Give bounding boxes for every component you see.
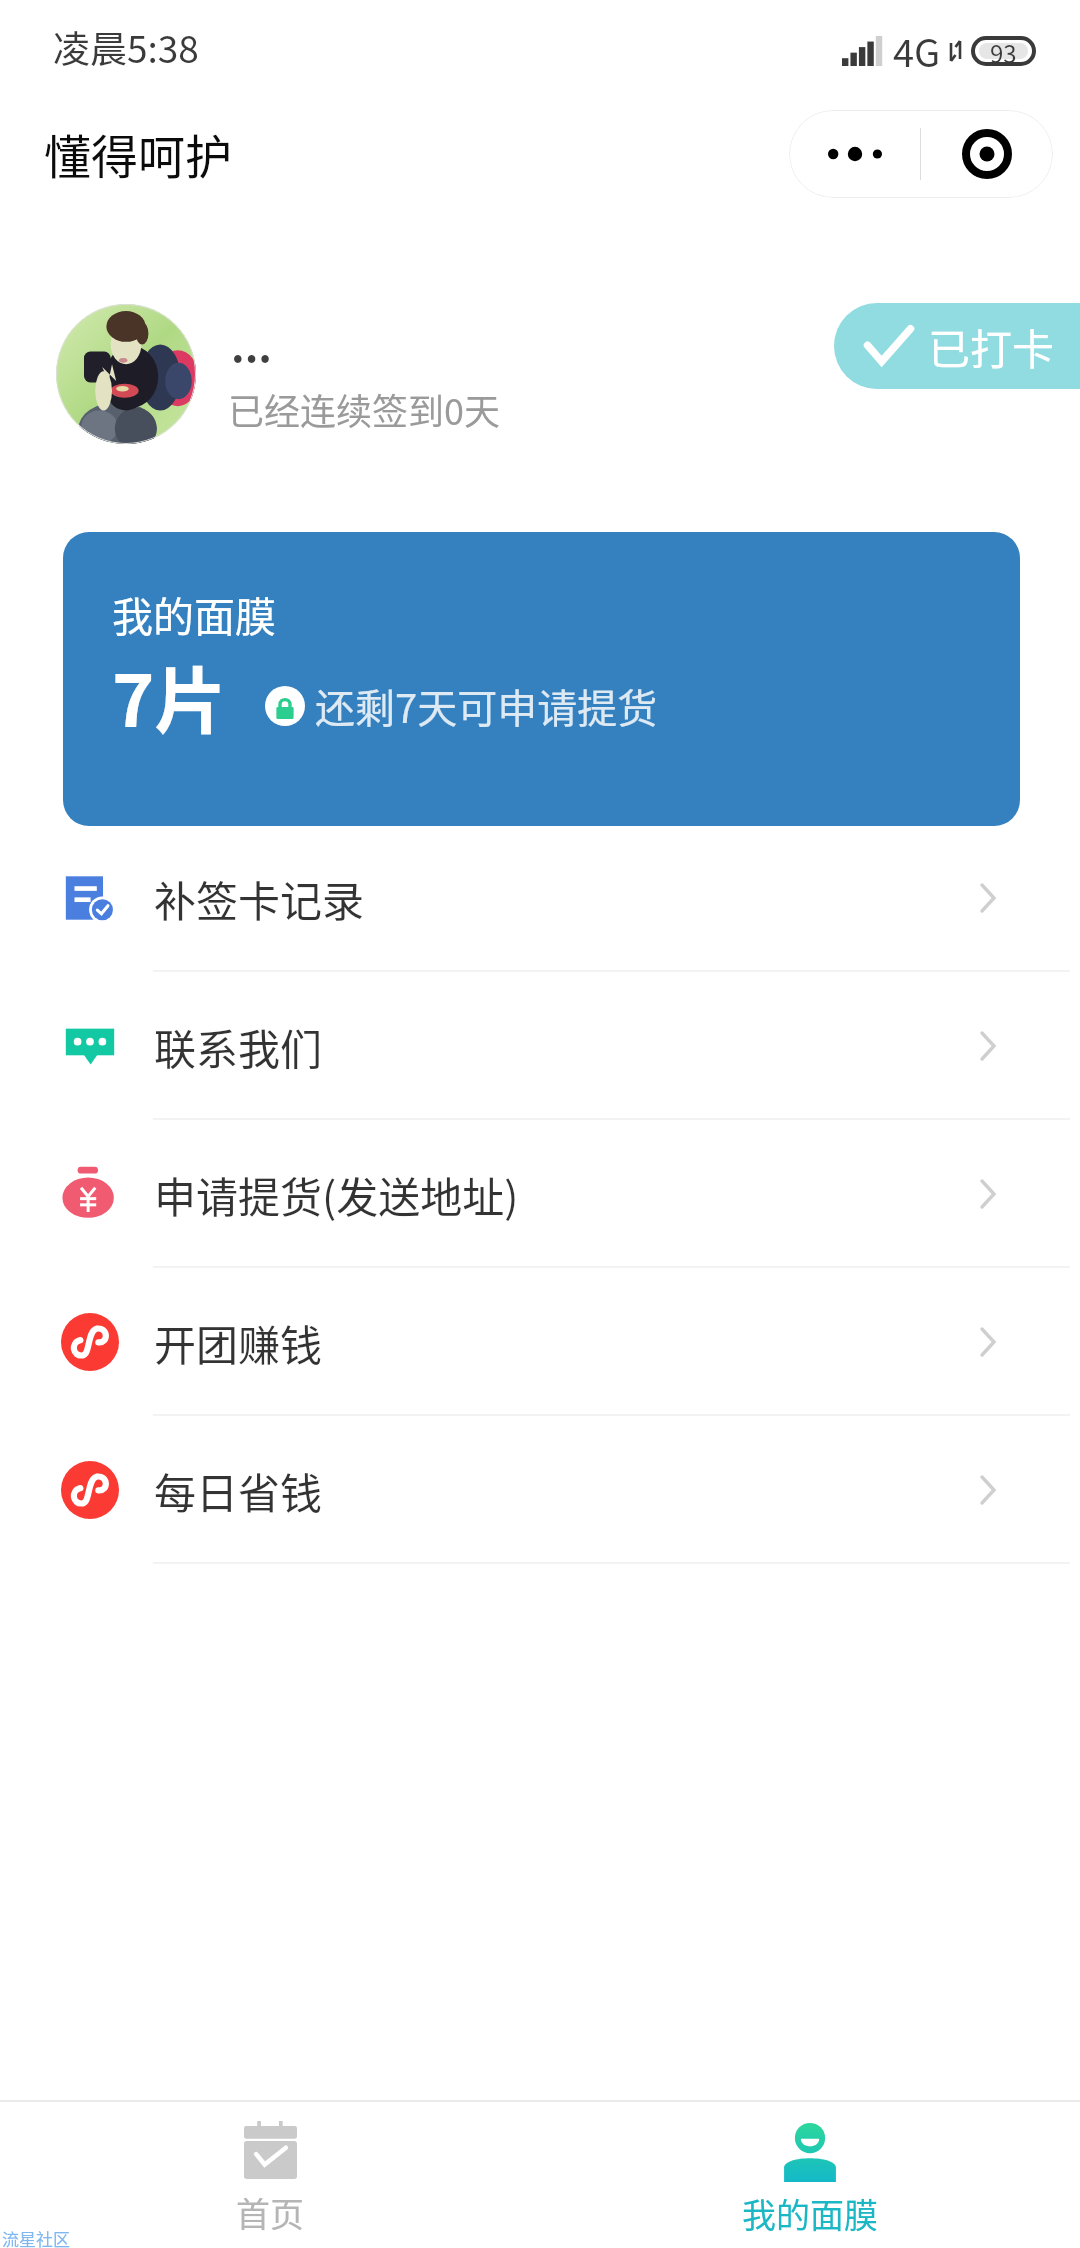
staticText: 首页 — [236, 2188, 304, 2237]
staticText: 我的面膜 — [742, 2189, 878, 2238]
button[interactable]: 申请提货(发送地址) — [0, 1120, 1080, 1268]
button[interactable]: User avatar — [56, 304, 196, 444]
staticText: 凌晨5:38 — [53, 20, 199, 74]
button[interactable]: 补签卡记录 — [0, 824, 1080, 972]
staticText: 4G — [893, 23, 941, 78]
staticText: 7片 — [112, 643, 227, 747]
staticText: 每日省钱 — [154, 1460, 323, 1521]
staticText: 流星社区 — [2, 2226, 70, 2248]
button[interactable]: 联系我们 — [0, 972, 1080, 1120]
button[interactable]: 我的面膜 — [63, 532, 1020, 826]
staticText: 已打卡 — [928, 316, 1055, 377]
staticText: 还剩7天可申请提货 — [315, 677, 658, 735]
button[interactable]: 每日省钱 — [0, 1416, 1080, 1564]
staticText: 懂得呵护 — [44, 119, 232, 187]
staticText: 我的面膜 — [112, 584, 276, 643]
staticText: 联系我们 — [154, 1016, 323, 1077]
staticText: 已经连续签到0天 — [228, 383, 500, 435]
button[interactable]: 首页 — [0, 2102, 540, 2248]
staticText: 开团赚钱 — [154, 1312, 323, 1373]
staticText: 93 — [990, 35, 1017, 65]
staticText: 申请提货(发送地址) — [154, 1164, 519, 1225]
staticText: 补签卡记录 — [154, 868, 365, 929]
button[interactable]: 已打卡 — [834, 303, 1080, 389]
button[interactable]: More options and close mini program — [789, 110, 1053, 198]
staticText: ... — [231, 313, 272, 374]
button[interactable]: 我的面膜 — [540, 2102, 1080, 2248]
button[interactable]: 开团赚钱 — [0, 1268, 1080, 1416]
